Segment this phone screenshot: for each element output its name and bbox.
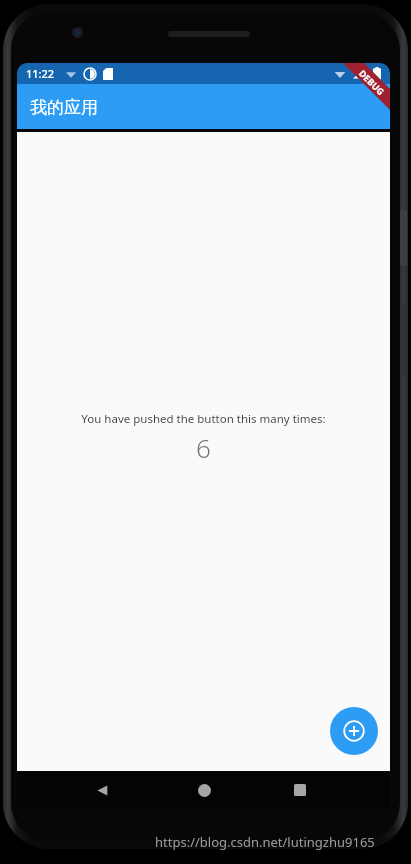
staticText: 我的应用: [30, 97, 98, 118]
staticText: 6: [196, 430, 211, 465]
staticText: You have pushed the button this many tim…: [81, 411, 326, 427]
button[interactable]: Recent apps: [272, 771, 328, 809]
button[interactable]: Back: [83, 771, 411, 809]
button[interactable]: Home: [176, 771, 232, 809]
staticText: https://blog.csdn.net/lutingzhu9165: [155, 833, 375, 851]
button[interactable]: Increment: [330, 707, 378, 755]
staticText: 11:22: [26, 66, 55, 81]
staticText: DEBUG: [357, 67, 387, 97]
